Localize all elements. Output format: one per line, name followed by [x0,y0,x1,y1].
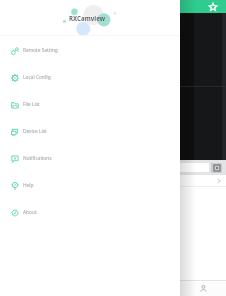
staticText: Device List [23,128,47,135]
staticText: Local Config [23,74,51,81]
staticText: Help [23,182,34,189]
button[interactable]: Account [197,282,210,295]
button[interactable]: Snapshot [211,163,222,173]
button[interactable]: Help [0,170,180,197]
button[interactable]: Remote Setting [0,35,180,62]
button[interactable]: Favorite [205,0,221,13]
staticText: RXCamview [69,14,106,22]
staticText: Remote Setting [23,47,58,54]
staticText: File List [23,101,40,108]
button[interactable]: Local Config [0,62,180,89]
staticText: About [23,209,37,216]
button[interactable]: Notifications [0,143,180,170]
button[interactable]: Device List [0,116,180,143]
button[interactable]: About [0,197,180,224]
button[interactable]: File List [0,89,180,116]
staticText: Notifications [23,155,52,162]
